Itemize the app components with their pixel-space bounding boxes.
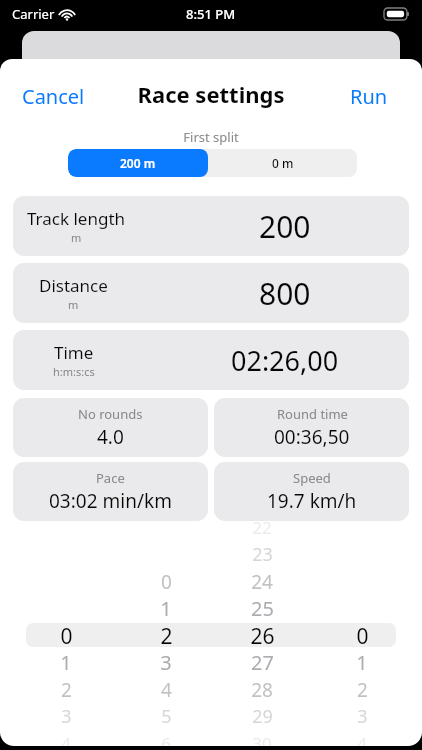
staticText: m — [71, 230, 82, 245]
staticText: 5 — [161, 704, 172, 729]
staticText: 0 — [356, 622, 369, 649]
staticText: m — [68, 297, 79, 312]
staticText: 0 m — [272, 155, 294, 171]
button[interactable]: 200 m — [68, 149, 208, 177]
staticText: 27 — [251, 649, 274, 676]
button[interactable]: 0 — [0, 519, 422, 746]
staticText: 3 — [61, 704, 72, 729]
staticText: 6 — [161, 732, 171, 746]
staticText: Distance — [39, 274, 108, 297]
button[interactable]: 0 — [0, 519, 422, 746]
staticText: Cancel — [22, 83, 85, 110]
staticText: 4 — [357, 732, 367, 746]
staticText: 29 — [252, 704, 273, 729]
staticText: Speed — [293, 469, 331, 487]
staticText: Race settings — [0, 79, 422, 109]
button[interactable]: 0 — [0, 519, 422, 746]
staticText: 24 — [251, 569, 273, 595]
staticText: 3 — [160, 649, 172, 676]
button[interactable]: Speed — [214, 462, 409, 521]
staticText: Pace — [96, 469, 125, 487]
staticText: 4 — [61, 732, 71, 746]
button[interactable]: Time — [13, 330, 409, 390]
staticText: Track length — [27, 207, 126, 230]
staticText: 3 — [357, 704, 368, 729]
staticText: 2 — [357, 677, 368, 703]
staticText: 23 — [252, 542, 273, 567]
button[interactable]: Run — [340, 78, 398, 115]
staticText: 02:26,00 — [231, 342, 339, 379]
button[interactable]: Distance — [13, 263, 409, 323]
staticText: 4.0 — [97, 424, 124, 450]
staticText: 8:51 PM — [186, 5, 236, 23]
staticText: 19.7 km/h — [267, 488, 357, 514]
button[interactable]: 22 — [0, 519, 422, 746]
staticText: Round time — [277, 405, 348, 423]
button[interactable]: Track length — [13, 196, 409, 256]
staticText: 2 — [61, 677, 72, 703]
staticText: Carrier — [12, 5, 55, 23]
staticText: 2 — [160, 622, 173, 649]
staticText: 1 — [60, 649, 72, 676]
other: Time picker — [0, 519, 422, 746]
staticText: 1 — [160, 595, 172, 622]
button[interactable]: Cancel — [12, 78, 95, 115]
staticText: 26 — [250, 622, 275, 649]
staticText: 4 — [161, 677, 172, 703]
staticText: 0 — [161, 569, 172, 595]
staticText: 800 — [259, 273, 311, 314]
staticText: No rounds — [78, 405, 143, 423]
staticText: 0 — [60, 622, 73, 649]
button[interactable]: 0 m — [208, 149, 357, 177]
button[interactable]: Round time — [214, 398, 409, 457]
staticText: 1 — [356, 649, 368, 676]
staticText: h:m:s:cs — [53, 364, 95, 379]
button[interactable]: No rounds — [13, 398, 208, 457]
staticText: 200 m — [120, 155, 156, 171]
staticText: First split — [0, 128, 422, 146]
staticText: 00:36,50 — [274, 424, 350, 450]
staticText: 30 — [252, 732, 272, 746]
staticText: Time — [54, 341, 94, 364]
staticText: 03:02 min/km — [49, 488, 172, 514]
button[interactable]: Pace — [13, 462, 208, 521]
staticText: 22 — [252, 516, 272, 539]
staticText: 25 — [251, 595, 274, 622]
staticText: Run — [350, 83, 388, 110]
staticText: 28 — [251, 677, 273, 703]
staticText: 200 — [259, 206, 311, 247]
